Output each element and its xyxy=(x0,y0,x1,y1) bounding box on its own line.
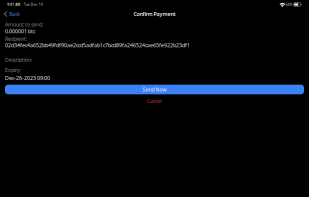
button[interactable]: Cancel xyxy=(0,97,309,104)
button[interactable]: Send Now xyxy=(5,85,304,94)
staticText: 64% xyxy=(286,2,293,7)
staticText: Recipient: xyxy=(5,35,27,42)
staticText: Expiry: xyxy=(5,66,21,74)
staticText: Send Now xyxy=(142,86,166,93)
staticText: Amount to send: xyxy=(5,21,43,28)
staticText: Cancel xyxy=(147,97,162,105)
staticText: Tue Dec 19 xyxy=(24,2,43,7)
staticText: Description: xyxy=(5,56,32,63)
staticText: 9:01 AM xyxy=(7,2,20,7)
button[interactable]: Back xyxy=(0,9,24,19)
staticText: Back xyxy=(9,11,20,17)
staticText: Confirm Payment xyxy=(133,10,175,18)
staticText: Dec-26-2023 09:00 xyxy=(5,74,50,82)
staticText: 02d34fec4a652bb49fdf90ae2ccd5adfab1c7bcd… xyxy=(5,42,190,49)
staticText: 0.000001 btc xyxy=(5,28,35,35)
